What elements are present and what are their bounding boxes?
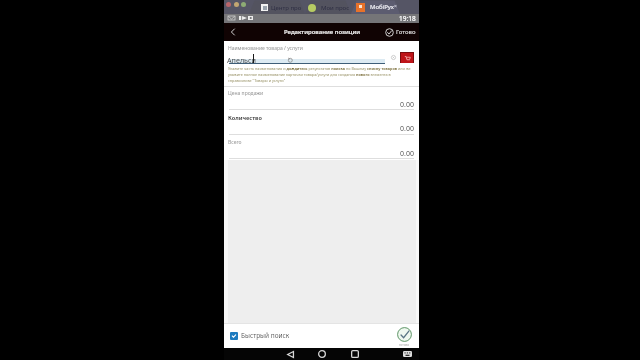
button[interactable] — [261, 4, 268, 11]
button[interactable] — [356, 3, 365, 12]
staticText: 19:18 — [399, 14, 416, 23]
staticText: Всего — [228, 139, 242, 146]
staticText: Количество — [228, 114, 262, 122]
button[interactable]: Scan barcode — [400, 52, 414, 63]
staticText: Готово — [396, 28, 416, 36]
staticText: 0.00 — [224, 124, 414, 134]
staticText: 0.00 — [224, 149, 414, 159]
staticText: Быстрый поиск — [241, 331, 290, 340]
button[interactable]: Back — [284, 348, 296, 360]
button[interactable]: Back — [224, 23, 242, 41]
button[interactable]: Confirm — [397, 327, 412, 342]
staticText: 0.00 — [224, 100, 414, 110]
button[interactable]: Готово — [385, 23, 416, 41]
button[interactable]: Мои прос — [321, 4, 350, 12]
button[interactable]: Clear text — [389, 53, 397, 61]
button[interactable]: Home — [316, 348, 328, 360]
button[interactable]: Быстрый поиск — [230, 328, 290, 343]
staticText: Укажите часть наименования и дождитесь р… — [228, 66, 412, 83]
staticText: Цена продажи — [228, 90, 264, 97]
button[interactable]: МобiРух — [370, 3, 394, 11]
staticText: готово — [399, 343, 410, 347]
button[interactable]: Центр про — [271, 4, 302, 12]
staticText: Апельси — [227, 55, 257, 65]
staticText: × — [394, 3, 397, 10]
button[interactable] — [308, 4, 316, 12]
staticText: Наименование товара / услуги — [228, 45, 303, 52]
staticText: Редактирование позиции — [284, 28, 361, 36]
button[interactable]: Recent apps — [349, 348, 361, 360]
button[interactable]: Keyboard — [403, 351, 412, 357]
